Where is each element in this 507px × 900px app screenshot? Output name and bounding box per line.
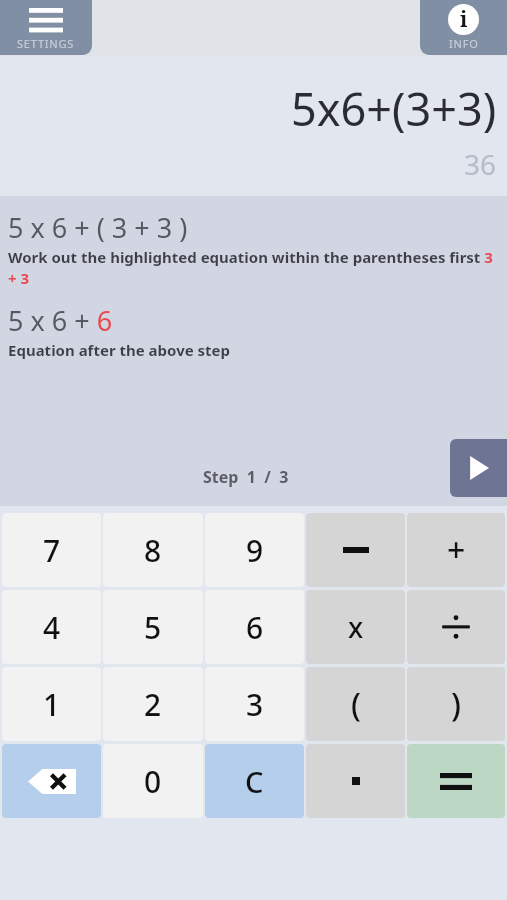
button[interactable]: 4 [2, 590, 101, 664]
staticText: 9 [246, 530, 264, 571]
button[interactable]: Backspace [2, 744, 101, 818]
staticText: 8 [144, 530, 162, 571]
staticText: i [460, 5, 468, 34]
staticText: SETTINGS [17, 36, 75, 51]
button[interactable]: Info [420, 0, 507, 55]
button[interactable]: 5 [103, 590, 203, 664]
button[interactable]: 9 [205, 513, 304, 587]
staticText: INFO [449, 36, 479, 51]
staticText: 0 [144, 761, 162, 802]
staticText: ) [451, 682, 461, 726]
button[interactable]: Minus [306, 513, 405, 587]
staticText: 2 [144, 684, 162, 725]
button[interactable]: C [205, 744, 304, 818]
staticText: 5 x 6 + 6 [8, 302, 113, 339]
button[interactable]: 8 [103, 513, 203, 587]
staticText: + [447, 528, 466, 572]
staticText: x [348, 608, 364, 646]
button[interactable]: 6 [205, 590, 304, 664]
button[interactable]: 7 [2, 513, 101, 587]
button[interactable]: Settings [0, 0, 92, 55]
staticText: 6 [246, 607, 264, 648]
staticText: 3 [246, 684, 264, 725]
button[interactable]: 0 [103, 744, 203, 818]
button[interactable]: x [306, 590, 405, 664]
button[interactable]: Decimal point [306, 744, 405, 818]
button[interactable]: Next step [450, 439, 507, 497]
staticText: 5 [144, 607, 162, 648]
staticText: 5 x 6 + ( 3 + 3 ) [8, 209, 188, 246]
button[interactable]: Equals [407, 744, 505, 818]
button[interactable]: ) [407, 667, 505, 741]
staticText: Work out the highlighted equation within… [8, 247, 493, 289]
staticText: C [245, 762, 264, 801]
staticText: 36 [464, 145, 497, 183]
button[interactable]: + [407, 513, 505, 587]
staticText: 7 [43, 530, 61, 571]
staticText: 1 [43, 684, 61, 725]
button[interactable]: 2 [103, 667, 203, 741]
staticText: Step 1 / 3 [203, 466, 289, 488]
button[interactable]: ( [306, 667, 405, 741]
button[interactable]: 3 [205, 667, 304, 741]
button[interactable]: 1 [2, 667, 101, 741]
staticText: 5x6+(3+3) [291, 78, 497, 139]
button[interactable]: Divide [407, 590, 505, 664]
staticText: Equation after the above step [8, 340, 231, 360]
staticText: ( [351, 682, 361, 726]
staticText: 4 [43, 607, 61, 648]
